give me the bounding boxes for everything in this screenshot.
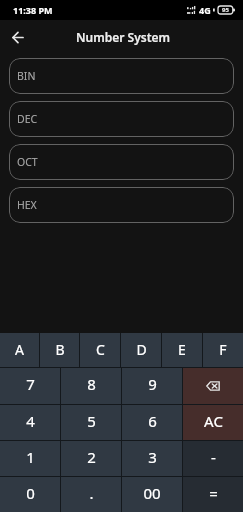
button[interactable]: 1 [0,441,60,476]
staticText: 7 [26,374,35,394]
staticText: D [136,340,147,359]
staticText: 11:38 PM [13,4,53,16]
button[interactable]: . [61,477,121,512]
button[interactable]: 2 [61,441,121,476]
staticText: 2 [87,447,96,467]
staticText: DEC [17,112,38,126]
button[interactable]: 9 [122,368,182,404]
other: Backspace [206,381,220,391]
staticText: 6 [148,411,157,431]
staticText: HEX [17,198,37,212]
button[interactable]: BIN [9,58,234,94]
button[interactable]: C [80,333,120,367]
button[interactable]: 5 [61,405,121,440]
staticText: AC [204,411,223,431]
staticText: C [96,340,105,359]
button[interactable]: HEX [9,187,234,223]
button[interactable]: D [121,333,161,367]
staticText: . [89,483,94,503]
button[interactable]: 7 [0,368,60,404]
button[interactable]: F [203,333,243,367]
staticText: E [178,340,186,359]
button[interactable]: = [183,477,243,512]
staticText: 1 [26,447,35,467]
button[interactable]: - [183,441,243,476]
staticText: BIN [17,69,36,83]
staticText: B [55,340,65,359]
staticText: F [219,340,227,359]
staticText: 95 [222,6,229,14]
staticText: 8 [87,374,96,394]
staticText: 3 [148,447,157,467]
button[interactable]: 4 [0,405,60,440]
button[interactable]: B [40,333,79,367]
button[interactable]: 8 [61,368,121,404]
staticText: OCT [17,155,38,169]
staticText: A [15,340,24,359]
button[interactable]: E [162,333,202,367]
button[interactable]: DEC [9,101,234,137]
button[interactable]: 00 [122,477,182,512]
staticText: 5 [87,411,96,431]
button[interactable]: Backspace [183,368,243,404]
staticText: 4G [199,4,211,16]
button[interactable]: 0 [0,477,60,512]
staticText: - [211,447,216,467]
staticText: 4 [26,411,35,431]
staticText: = [209,483,218,503]
button[interactable]: OCT [9,144,234,180]
button[interactable]: 6 [122,405,182,440]
button[interactable]: A [0,333,39,367]
button[interactable]: Back [5,23,31,49]
staticText: 0 [26,483,35,503]
button[interactable]: 3 [122,441,182,476]
button[interactable]: AC [183,405,243,440]
staticText: 9 [148,374,157,394]
staticText: 00 [143,483,161,503]
staticText: Number System [76,29,171,45]
